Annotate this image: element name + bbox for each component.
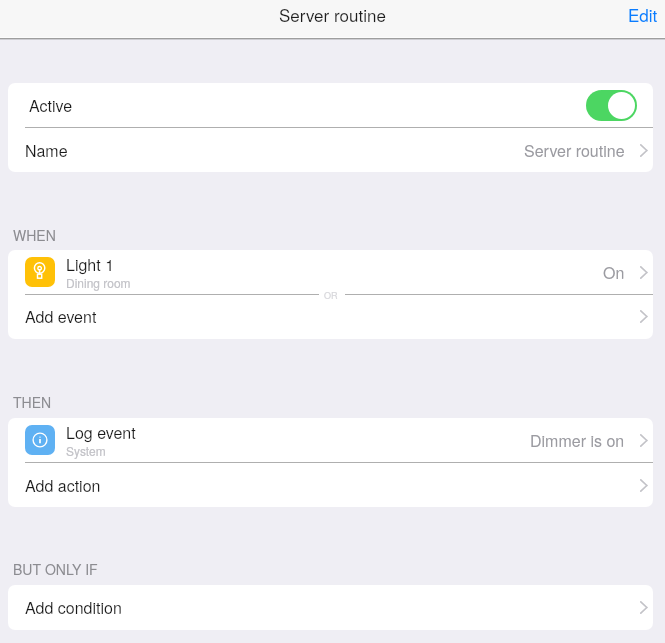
staticText: Dimmer is on: [530, 429, 625, 452]
staticText: Dining room: [66, 274, 131, 291]
staticText: System: [66, 442, 106, 459]
staticText: Add event: [25, 305, 97, 328]
staticText: THEN: [13, 392, 52, 412]
staticText: BUT ONLY IF: [13, 559, 98, 579]
staticText: Add action: [25, 474, 101, 497]
button[interactable]: Add action: [8, 463, 653, 507]
button[interactable]: Active: [8, 83, 653, 127]
staticText: Server routine: [279, 2, 386, 26]
button[interactable]: Active toggle: [586, 90, 637, 121]
staticText: WHEN: [13, 225, 56, 245]
button[interactable]: Light 1: [8, 250, 653, 294]
staticText: Log event: [66, 421, 136, 444]
staticText: Name: [25, 139, 68, 162]
button[interactable]: Edit: [595, 0, 665, 34]
staticText: OR: [324, 289, 338, 299]
button[interactable]: Name: [8, 128, 653, 172]
button[interactable]: Add condition: [8, 585, 653, 630]
staticText: Server routine: [524, 139, 625, 162]
button[interactable]: Log event: [8, 418, 653, 462]
staticText: On: [603, 261, 625, 284]
button[interactable]: Add event: [8, 294, 653, 339]
staticText: Light 1: [66, 253, 115, 276]
staticText: Edit: [628, 2, 658, 26]
staticText: Add condition: [25, 596, 122, 619]
staticText: Active: [29, 94, 73, 117]
